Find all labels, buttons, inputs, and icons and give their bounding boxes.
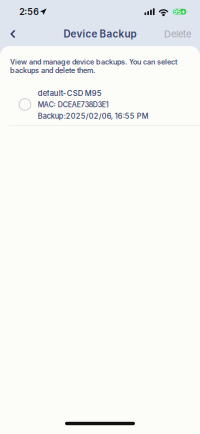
staticText: 95+ [173,9,186,15]
staticText: View and manage device backups. You can … [10,57,177,66]
staticText: Device Backup [63,28,136,40]
staticText: Delete [164,28,191,40]
button[interactable]: default-CSD M95 [0,89,200,126]
staticText: backups and delete them. [10,66,95,75]
button[interactable]: Delete [164,22,200,46]
staticText: default-CSD M95 [38,89,102,98]
button[interactable]: Back [0,22,26,46]
staticText: 2:56 [19,6,39,17]
staticText: MAC: DCEAE738D3E1 [38,100,109,109]
staticText: Backup:2025/02/06, 16:55 PM [38,112,149,120]
